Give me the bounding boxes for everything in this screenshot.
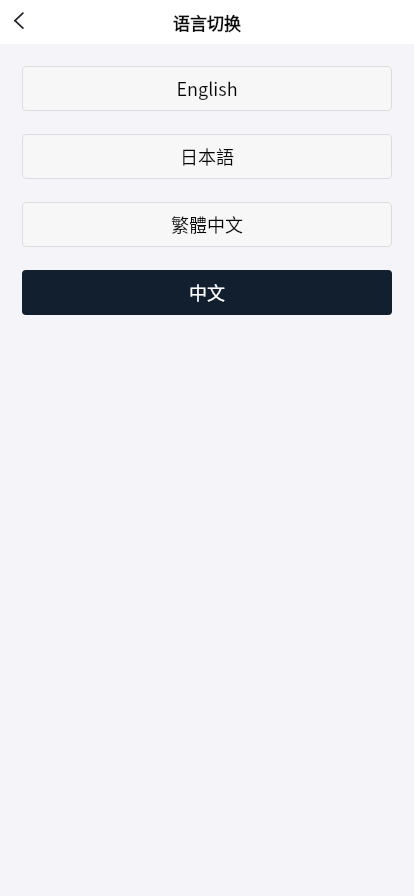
button[interactable]: 日本語 <box>22 134 392 179</box>
button[interactable]: 繁體中文 <box>22 202 392 247</box>
staticText: 语言切换 <box>173 10 241 35</box>
staticText: English <box>176 75 238 101</box>
button[interactable]: English <box>22 66 392 111</box>
staticText: 日本語 <box>180 143 234 169</box>
button[interactable]: 中文 <box>22 270 392 315</box>
button[interactable]: Back <box>0 0 44 44</box>
staticText: 繁體中文 <box>171 211 243 237</box>
staticText: 中文 <box>189 279 225 305</box>
